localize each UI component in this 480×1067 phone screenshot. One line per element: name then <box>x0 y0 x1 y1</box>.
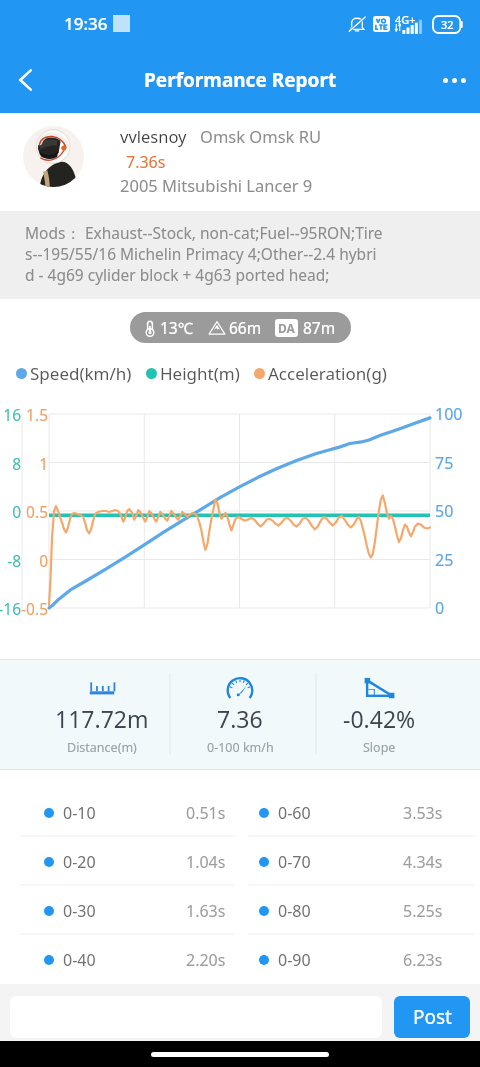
button[interactable]: 0-80 <box>240 886 480 935</box>
staticText: 0.51s <box>186 802 226 824</box>
staticText: 4G+ <box>395 12 416 27</box>
staticText: Height(m) <box>160 362 240 385</box>
staticText: 50 <box>435 500 479 522</box>
staticText: 1 <box>15 453 48 474</box>
button[interactable]: More options <box>428 54 480 106</box>
button[interactable]: Back <box>0 54 52 106</box>
staticText: 0 <box>0 501 21 522</box>
staticText: 0-100 km/h <box>207 739 274 756</box>
button[interactable]: 0-30 <box>0 886 240 935</box>
staticText: s--195/55/16 Michelin Primacy 4;Other--2… <box>25 243 377 264</box>
staticText: 0-70 <box>278 851 311 873</box>
staticText: 3.53s <box>403 802 443 824</box>
button[interactable]: 0-20 <box>0 837 240 886</box>
staticText: 1.5 <box>15 404 48 425</box>
staticText: 117.72m <box>55 703 149 734</box>
staticText: 7.36 <box>217 703 263 734</box>
staticText: DA <box>278 320 295 336</box>
staticText: 66m <box>229 317 262 338</box>
staticText: 0-20 <box>63 851 96 873</box>
staticText: Performance Report <box>144 67 337 93</box>
staticText: 1.63s <box>186 900 226 922</box>
staticText: 87m <box>303 317 336 338</box>
button[interactable]: Avatar <box>23 126 84 187</box>
staticText: 4.34s <box>403 851 443 873</box>
staticText: vvlesnoy <box>120 125 187 147</box>
button[interactable]: 13℃ <box>130 312 351 343</box>
staticText: Omsk Omsk RU <box>200 125 321 147</box>
staticText: 8 <box>0 453 21 474</box>
staticText: -8 <box>0 550 21 571</box>
staticText: 6.23s <box>403 949 443 971</box>
staticText: Mods： Exhaust--Stock, non-cat;Fuel--95RO… <box>25 222 383 243</box>
staticText: 13℃ <box>160 317 194 338</box>
button[interactable]: 0-40 <box>0 935 240 984</box>
staticText: Distance(m) <box>67 739 137 756</box>
staticText: 0-60 <box>278 802 311 824</box>
staticText: Acceleration(g) <box>268 362 387 385</box>
staticText: 0-10 <box>63 802 96 824</box>
staticText: 0-30 <box>63 900 96 922</box>
staticText: Slope <box>363 739 396 756</box>
staticText: 0-40 <box>63 949 96 971</box>
staticText: -0.5 <box>15 598 48 619</box>
button[interactable]: Post <box>394 996 470 1038</box>
staticText: 75 <box>435 452 479 474</box>
staticText: 19:36 <box>64 12 108 35</box>
staticText: 2.20s <box>186 949 226 971</box>
staticText: 2005 Mitsubishi Lancer 9 <box>120 174 313 196</box>
staticText: 0-90 <box>278 949 311 971</box>
staticText: d - 4g69 cylider block + 4g63 ported hea… <box>25 264 330 285</box>
staticText: 16 <box>0 404 21 425</box>
staticText: Speed(km/h) <box>30 362 132 385</box>
staticText: Post <box>413 1004 452 1030</box>
staticText: 0 <box>435 597 479 619</box>
staticText: 0 <box>15 550 48 571</box>
staticText: -16 <box>0 598 21 619</box>
staticText: 0-80 <box>278 900 311 922</box>
staticText: 100 <box>435 403 479 425</box>
staticText: -0.42% <box>343 703 416 734</box>
staticText: 5.25s <box>403 900 443 922</box>
staticText: 25 <box>435 549 479 571</box>
button[interactable]: 0-90 <box>240 935 480 984</box>
button[interactable]: 0-60 <box>240 788 480 837</box>
staticText: 1.04s <box>186 851 226 873</box>
staticText: 7.36s <box>126 151 166 173</box>
button[interactable]: 0-70 <box>240 837 480 886</box>
staticText: 32 <box>441 17 454 32</box>
staticText: 0.5 <box>15 501 48 522</box>
button[interactable]: 0-10 <box>0 788 240 837</box>
